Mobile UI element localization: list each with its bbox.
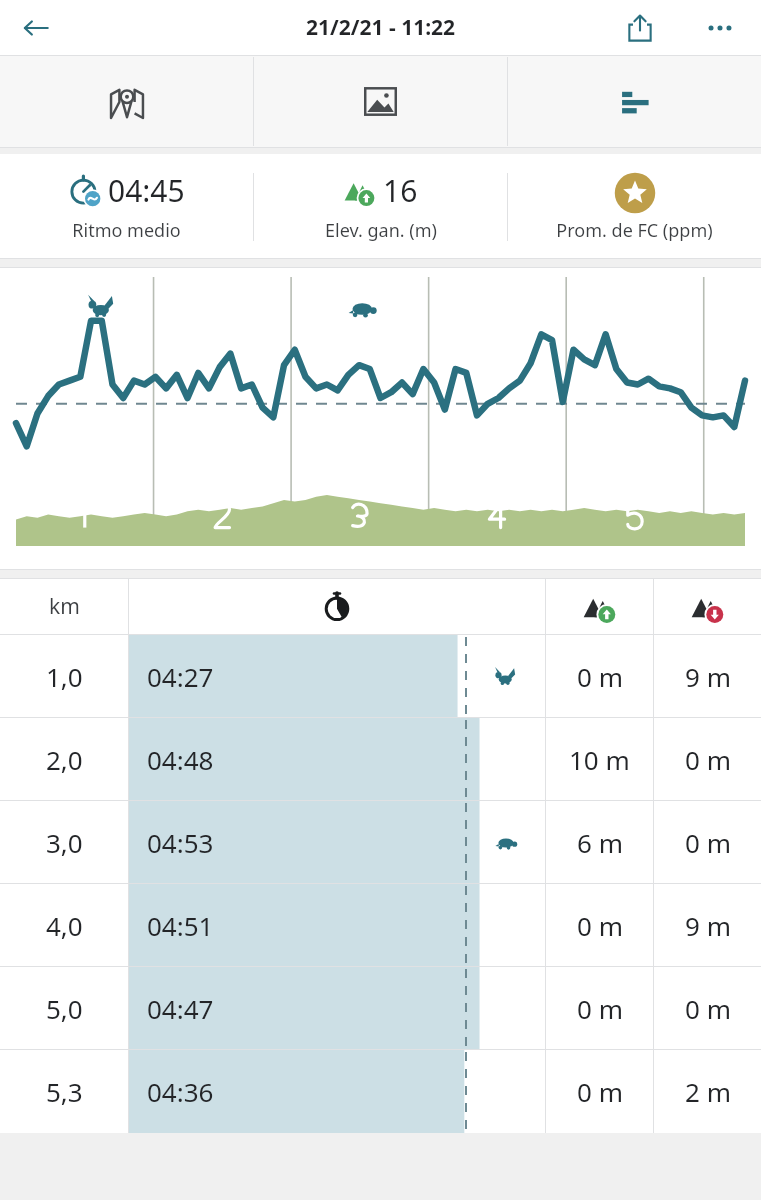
staticText: 5,0 bbox=[46, 991, 83, 1026]
staticText: 04:53 bbox=[147, 825, 214, 860]
staticText: 1,0 bbox=[46, 659, 83, 694]
button[interactable]: 04:45 bbox=[0, 154, 253, 259]
staticText: 0 m bbox=[577, 659, 623, 694]
staticText: 10 m bbox=[569, 742, 630, 777]
staticText: Ritmo medio bbox=[72, 218, 181, 243]
staticText: 9 m bbox=[685, 659, 731, 694]
staticText: 04:27 bbox=[147, 659, 214, 694]
button[interactable]: 1,0 bbox=[0, 635, 761, 718]
staticText: 16 bbox=[383, 170, 418, 211]
staticText: 2 m bbox=[685, 1074, 731, 1109]
button[interactable]: 16 bbox=[254, 154, 507, 259]
staticText: 6 m bbox=[577, 825, 623, 860]
staticText: 0 m bbox=[577, 908, 623, 943]
button[interactable]: Back bbox=[14, 6, 58, 50]
staticText: 04:48 bbox=[147, 742, 214, 777]
button[interactable]: 2,0 bbox=[0, 718, 761, 801]
staticText: 04:36 bbox=[147, 1074, 214, 1109]
staticText: Elev. gan. (m) bbox=[325, 218, 437, 243]
staticText: 3,0 bbox=[46, 825, 83, 860]
staticText: 0 m bbox=[685, 742, 731, 777]
staticText: 0 m bbox=[685, 825, 731, 860]
staticText: 4,0 bbox=[46, 908, 83, 943]
button[interactable]: Share bbox=[617, 5, 663, 51]
staticText: Prom. de FC (ppm) bbox=[556, 218, 713, 243]
button[interactable]: Map bbox=[0, 55, 253, 148]
staticText: 21/2/21 - 11:22 bbox=[306, 13, 456, 42]
staticText: 0 m bbox=[577, 1074, 623, 1109]
staticText: 5,3 bbox=[46, 1074, 83, 1109]
button[interactable]: 3,0 bbox=[0, 801, 761, 884]
button[interactable]: 5,0 bbox=[0, 967, 761, 1050]
button[interactable]: Statistics bbox=[508, 55, 761, 148]
staticText: 2,0 bbox=[46, 742, 83, 777]
staticText: 04:51 bbox=[147, 908, 214, 943]
button[interactable]: 5,3 bbox=[0, 1050, 761, 1133]
staticText: 0 m bbox=[685, 991, 731, 1026]
staticText: 0 m bbox=[577, 991, 623, 1026]
staticText: km bbox=[49, 592, 80, 621]
button[interactable]: More options bbox=[697, 5, 743, 51]
staticText: 04:47 bbox=[147, 991, 214, 1026]
button[interactable]: Prom. de FC (ppm) bbox=[508, 154, 761, 259]
staticText: 04:45 bbox=[108, 170, 185, 211]
staticText: 9 m bbox=[685, 908, 731, 943]
button[interactable]: 4,0 bbox=[0, 884, 761, 967]
button[interactable]: Photos bbox=[254, 55, 507, 148]
